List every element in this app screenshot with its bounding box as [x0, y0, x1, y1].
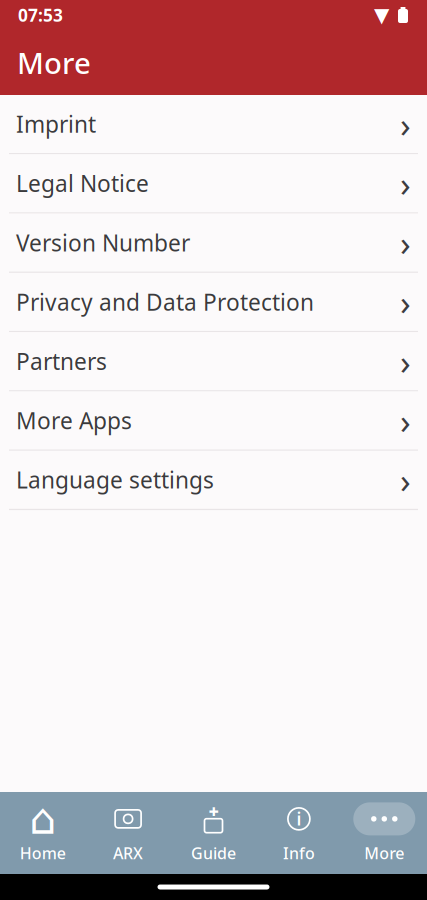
button[interactable]: Language settings	[0, 451, 427, 510]
button[interactable]: Version Number	[0, 214, 427, 273]
staticText: ⌂	[29, 795, 56, 843]
button[interactable]: i	[256, 792, 342, 874]
staticText: Guide	[191, 842, 236, 864]
button[interactable]: More Apps	[0, 391, 427, 451]
staticText: ›	[400, 279, 411, 325]
staticText: 07:53	[18, 3, 63, 26]
button[interactable]: ✚	[171, 792, 256, 874]
staticText: Legal Notice	[16, 168, 149, 198]
staticText: Partners	[16, 346, 107, 376]
button[interactable]: More	[342, 792, 427, 874]
button[interactable]: ARX	[85, 792, 171, 874]
button[interactable]: Privacy and Data Protection	[0, 273, 427, 332]
staticText: More Apps	[16, 405, 132, 435]
staticText: ✚	[208, 805, 218, 819]
staticText: More	[17, 43, 91, 82]
button[interactable]: Legal Notice	[0, 154, 427, 214]
button[interactable]: Partners	[0, 332, 427, 391]
staticText: ›	[400, 160, 411, 206]
button[interactable]: Imprint	[0, 95, 427, 154]
staticText: ›	[400, 338, 411, 384]
staticText: ▼	[374, 4, 389, 26]
staticText: ›	[400, 397, 411, 443]
button[interactable]: ⌂	[0, 792, 85, 874]
staticText: Privacy and Data Protection	[16, 287, 314, 317]
staticText: Home	[20, 842, 66, 864]
staticText: Version Number	[16, 227, 190, 258]
staticText: ›	[400, 101, 411, 147]
staticText: ›	[400, 457, 411, 503]
staticText: ARX	[113, 842, 143, 864]
staticText: Imprint	[16, 109, 96, 139]
staticText: ›	[400, 220, 411, 266]
staticText: i	[296, 807, 301, 830]
staticText: Language settings	[16, 465, 214, 495]
staticText: Info	[283, 842, 315, 864]
staticText: More	[364, 842, 404, 864]
